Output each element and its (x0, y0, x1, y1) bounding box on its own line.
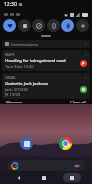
staticText: G (82, 87, 85, 92)
button[interactable]: Auto-rotate (47, 19, 60, 32)
staticText: Clear all (70, 100, 86, 103)
staticText: 12:30 (4, 1, 17, 8)
button[interactable]: Messages (20, 137, 33, 150)
staticText: Goderito Jeck Jackson (5, 81, 49, 87)
button[interactable]: Add tile (76, 19, 89, 32)
button[interactable]: GMAIL (2, 73, 90, 99)
staticText: Jack 3/10/20 (5, 87, 28, 92)
staticText: Heading for tubegotrand road (5, 58, 66, 64)
button[interactable]: Conversations (2, 40, 90, 48)
staticText: JK 10/20 (5, 92, 21, 97)
button[interactable] (7, 160, 85, 171)
staticText: P (82, 61, 85, 66)
button[interactable]: Flashlight (32, 19, 45, 32)
button[interactable]: Home (37, 173, 51, 182)
button[interactable]: Recent apps (63, 173, 81, 182)
button[interactable]: Bluetooth (61, 19, 74, 32)
button[interactable]: Do not disturb (18, 19, 31, 32)
staticText: MAPS (5, 52, 15, 57)
button[interactable]: Manage (5, 99, 24, 104)
button[interactable]: Wi-Fi (3, 19, 16, 32)
staticText: Tour East 10:30 (5, 64, 34, 69)
button[interactable]: MAPS (2, 50, 90, 71)
staticText: Manage (6, 100, 23, 103)
button[interactable]: Chrome (59, 137, 72, 150)
button[interactable]: Clear all (69, 99, 87, 104)
staticText: Conversations (11, 42, 38, 47)
staticText: GMAIL (5, 75, 16, 80)
button[interactable]: Back (12, 173, 26, 182)
